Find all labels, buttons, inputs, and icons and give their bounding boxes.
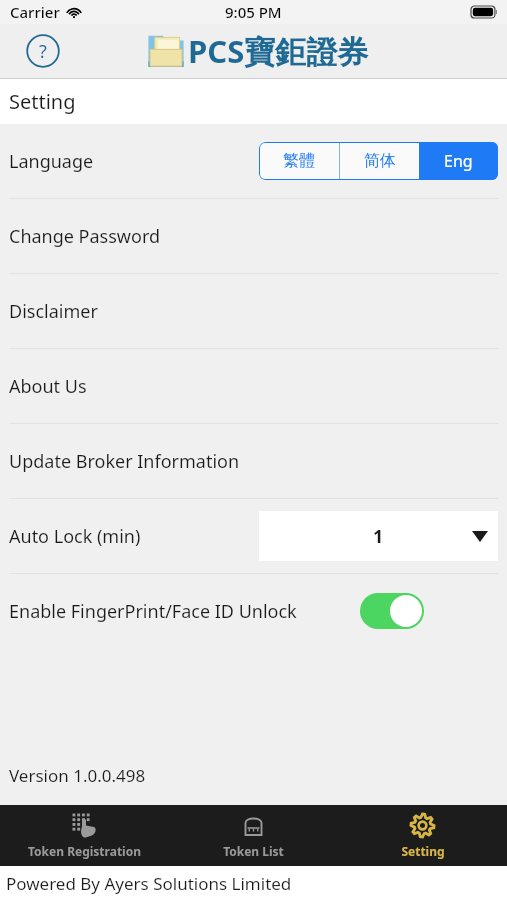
button[interactable]: Token List xyxy=(169,805,338,866)
button[interactable]: Token Registration xyxy=(0,805,169,866)
button[interactable]: Change Password xyxy=(0,199,507,273)
staticText: Setting xyxy=(401,843,445,859)
staticText: Token List xyxy=(223,843,284,859)
staticText: Update Broker Information xyxy=(9,449,240,474)
staticText: Auto Lock (min) xyxy=(9,524,141,549)
button[interactable]: 1 xyxy=(259,511,498,561)
button[interactable]: Update Broker Information xyxy=(0,424,507,498)
staticText: Language xyxy=(9,149,94,174)
staticText: Disclaimer xyxy=(9,299,98,324)
button[interactable]: Setting xyxy=(338,805,507,866)
staticText: ? xyxy=(39,39,47,64)
button[interactable]: Help xyxy=(26,34,60,68)
staticText: 1 xyxy=(373,524,384,549)
staticText: PCS寶鉅證券 xyxy=(188,30,369,72)
staticText: 繁體 xyxy=(283,151,315,171)
button[interactable]: Disclaimer xyxy=(0,274,507,348)
button[interactable]: Eng xyxy=(419,142,498,180)
staticText: Change Password xyxy=(9,224,161,249)
staticText: 9:05 PM xyxy=(225,2,282,22)
button[interactable]: 繁體 xyxy=(259,142,339,180)
button[interactable]: Enable FingerPrint or Face ID Unlock xyxy=(360,593,424,629)
staticText: Eng xyxy=(444,150,473,172)
staticText: Carrier xyxy=(10,2,60,22)
staticText: Token Registration xyxy=(28,843,141,859)
staticText: 简体 xyxy=(364,151,396,171)
staticText: Setting xyxy=(9,88,76,115)
button[interactable]: 简体 xyxy=(340,142,419,180)
staticText: Version 1.0.0.498 xyxy=(9,764,146,787)
button[interactable]: About Us xyxy=(0,349,507,423)
staticText: Powered By Ayers Solutions Limited xyxy=(6,872,292,895)
staticText: Enable FingerPrint/Face ID Unlock xyxy=(9,599,297,624)
staticText: About Us xyxy=(9,374,87,399)
